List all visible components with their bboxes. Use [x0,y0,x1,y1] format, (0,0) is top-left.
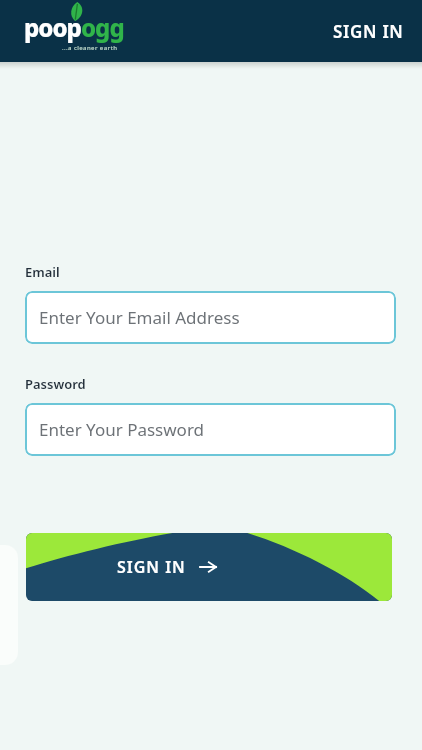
staticText: Password [25,375,86,393]
staticText: Enter Your Email Address [39,306,240,329]
staticText: Email [25,263,60,281]
button[interactable]: Enter Your Email Address [25,291,396,344]
staticText: SIGN IN [117,556,186,578]
staticText: Enter Your Password [39,418,205,441]
staticText: ...a cleaner earth [62,44,118,52]
staticText: SIGN IN [333,20,404,43]
button[interactable]: SIGN IN [315,6,422,57]
button[interactable]: Enter Your Password [25,403,396,456]
other: Sign in [200,559,216,575]
button[interactable]: SIGN IN [26,533,392,601]
staticText: ogg [81,11,124,44]
staticText: poop [24,11,81,44]
